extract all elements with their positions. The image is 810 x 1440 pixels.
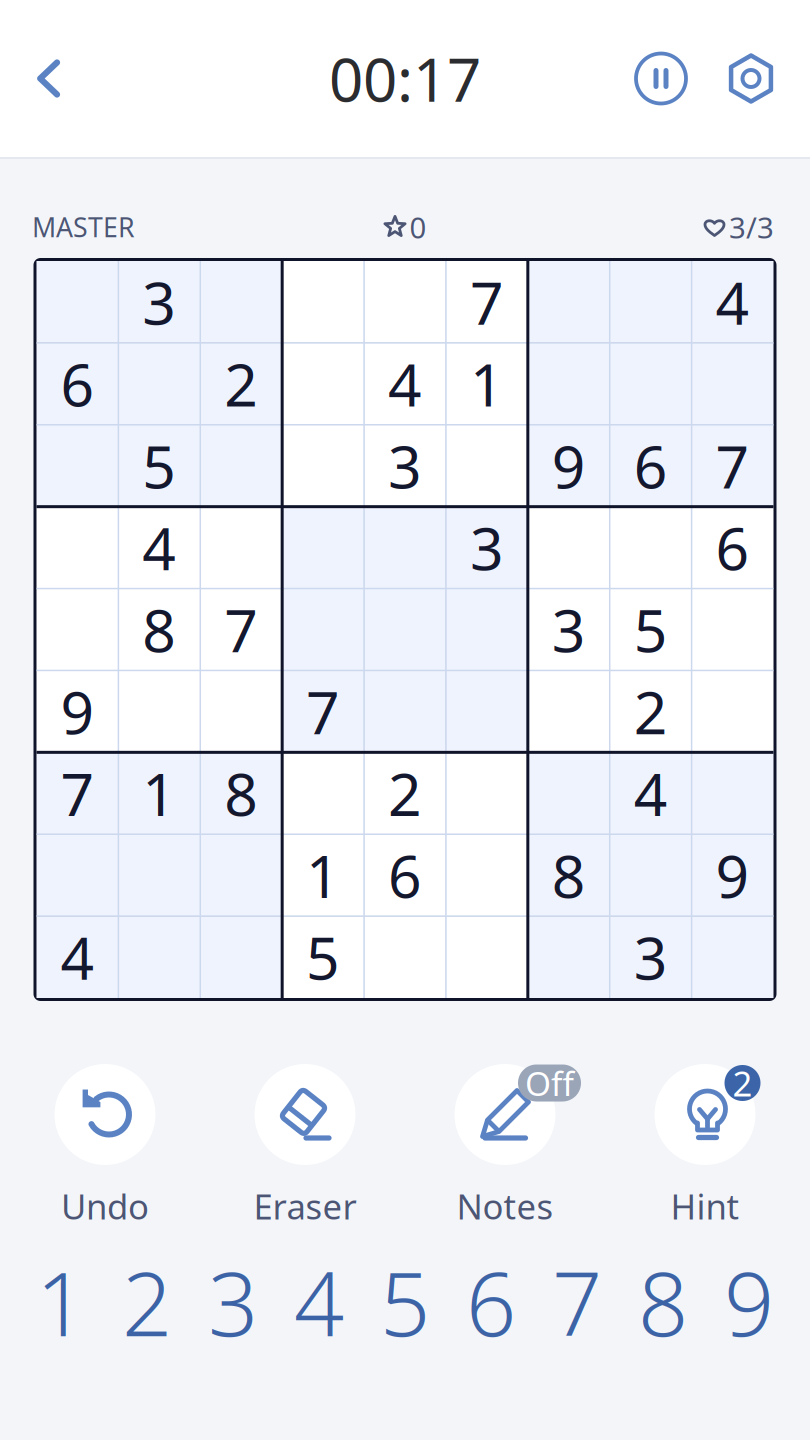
button[interactable]: Row 8 column 9, 9 xyxy=(692,834,773,916)
button[interactable]: Row 9 column 1, 4 xyxy=(36,916,118,998)
button[interactable]: Row 5 column 3, 7 xyxy=(200,589,282,670)
button[interactable]: Row 4 column 8, empty xyxy=(610,507,692,589)
button[interactable]: Row 5 column 6, empty xyxy=(446,589,528,670)
button[interactable]: Off xyxy=(405,1064,605,1227)
button[interactable]: Row 8 column 6, empty xyxy=(446,834,528,916)
button[interactable]: Row 8 column 8, empty xyxy=(610,834,692,916)
button[interactable]: Row 6 column 7, empty xyxy=(528,670,610,752)
button[interactable]: Row 2 column 2, empty xyxy=(118,343,200,425)
button[interactable]: Row 6 column 4, 7 xyxy=(282,670,364,752)
button[interactable]: Row 1 column 1, empty xyxy=(36,261,118,343)
button[interactable]: Row 8 column 3, empty xyxy=(200,834,282,916)
button[interactable]: Row 3 column 5, 3 xyxy=(364,425,446,507)
button[interactable]: Row 1 column 2, 3 xyxy=(118,261,200,343)
button[interactable]: Row 4 column 4, empty xyxy=(282,507,364,589)
button[interactable]: Row 2 column 3, 2 xyxy=(200,343,282,425)
button[interactable]: Row 1 column 5, empty xyxy=(364,261,446,343)
button[interactable]: Row 3 column 8, 6 xyxy=(610,425,692,507)
button[interactable]: Row 7 column 3, 8 xyxy=(200,752,282,834)
button[interactable]: 9 xyxy=(706,1247,792,1357)
button[interactable]: Row 4 column 1, empty xyxy=(36,507,118,589)
button[interactable]: Row 9 column 8, 3 xyxy=(610,916,692,998)
button[interactable]: Row 7 column 5, 2 xyxy=(364,752,446,834)
button[interactable]: Row 4 column 5, empty xyxy=(364,507,446,589)
button[interactable]: Undo xyxy=(5,1064,205,1227)
button[interactable]: Row 2 column 6, 1 xyxy=(446,343,528,425)
button[interactable]: Row 9 column 5, empty xyxy=(364,916,446,998)
button[interactable]: Row 8 column 4, 1 xyxy=(282,834,364,916)
button[interactable]: Row 3 column 3, empty xyxy=(200,425,282,507)
button[interactable]: Row 9 column 3, empty xyxy=(200,916,282,998)
staticText: 5 xyxy=(306,918,340,996)
button[interactable]: Row 1 column 9, 4 xyxy=(692,261,773,343)
button[interactable]: Row 7 column 6, empty xyxy=(446,752,528,834)
button[interactable]: Row 7 column 7, empty xyxy=(528,752,610,834)
button[interactable]: Row 3 column 1, empty xyxy=(36,425,118,507)
button[interactable]: Row 5 column 2, 8 xyxy=(118,589,200,670)
button[interactable]: Row 8 column 1, empty xyxy=(36,834,118,916)
button[interactable]: 7 xyxy=(534,1247,620,1357)
button[interactable]: Pause xyxy=(626,38,696,118)
button[interactable]: Row 2 column 9, empty xyxy=(692,343,773,425)
button[interactable]: Row 5 column 9, empty xyxy=(692,589,773,670)
button[interactable]: 8 xyxy=(620,1247,706,1357)
button[interactable]: Row 6 column 1, 9 xyxy=(36,670,118,752)
button[interactable]: Row 9 column 4, 5 xyxy=(282,916,364,998)
button[interactable]: Row 5 column 8, 5 xyxy=(610,589,692,670)
button[interactable]: 1 xyxy=(18,1247,104,1357)
button[interactable]: Row 3 column 7, 9 xyxy=(528,425,610,507)
button[interactable]: Row 9 column 7, empty xyxy=(528,916,610,998)
button[interactable]: Row 2 column 5, 4 xyxy=(364,343,446,425)
button[interactable]: Settings xyxy=(716,38,786,118)
button[interactable]: Row 7 column 2, 1 xyxy=(118,752,200,834)
button[interactable]: Row 3 column 6, empty xyxy=(446,425,528,507)
button[interactable]: Row 6 column 6, empty xyxy=(446,670,528,752)
button[interactable]: Row 8 column 2, empty xyxy=(118,834,200,916)
button[interactable]: Row 5 column 1, empty xyxy=(36,589,118,670)
staticText: 3/3 xyxy=(729,207,774,246)
staticText: 00:17 xyxy=(329,39,481,118)
button[interactable]: Row 6 column 5, empty xyxy=(364,670,446,752)
button[interactable]: Row 6 column 8, 2 xyxy=(610,670,692,752)
button[interactable]: Row 7 column 9, empty xyxy=(692,752,773,834)
button[interactable]: Row 3 column 4, empty xyxy=(282,425,364,507)
button[interactable]: 6 xyxy=(448,1247,534,1357)
button[interactable]: Row 6 column 9, empty xyxy=(692,670,773,752)
button[interactable]: 3 xyxy=(190,1247,276,1357)
button[interactable]: Row 8 column 5, 6 xyxy=(364,834,446,916)
button[interactable]: Row 2 column 1, 6 xyxy=(36,343,118,425)
button[interactable]: Row 1 column 4, empty xyxy=(282,261,364,343)
button[interactable]: Row 1 column 6, 7 xyxy=(446,261,528,343)
button[interactable]: Row 1 column 3, empty xyxy=(200,261,282,343)
button[interactable]: Row 2 column 8, empty xyxy=(610,343,692,425)
button[interactable]: Row 4 column 6, 3 xyxy=(446,507,528,589)
button[interactable]: Row 7 column 8, 4 xyxy=(610,752,692,834)
button[interactable]: Row 9 column 9, empty xyxy=(692,916,773,998)
button[interactable]: Row 3 column 9, 7 xyxy=(692,425,773,507)
button[interactable]: Back xyxy=(19,38,79,118)
button[interactable]: Row 4 column 7, empty xyxy=(528,507,610,589)
button[interactable]: Row 3 column 2, 5 xyxy=(118,425,200,507)
button[interactable]: Row 7 column 4, empty xyxy=(282,752,364,834)
button[interactable]: Row 2 column 7, empty xyxy=(528,343,610,425)
button[interactable]: 5 xyxy=(362,1247,448,1357)
button[interactable]: Row 8 column 7, 8 xyxy=(528,834,610,916)
button[interactable]: Row 5 column 4, empty xyxy=(282,589,364,670)
button[interactable]: Row 1 column 8, empty xyxy=(610,261,692,343)
button[interactable]: Row 2 column 4, empty xyxy=(282,343,364,425)
button[interactable]: Row 6 column 3, empty xyxy=(200,670,282,752)
button[interactable]: Row 4 column 3, empty xyxy=(200,507,282,589)
button[interactable]: Row 5 column 7, 3 xyxy=(528,589,610,670)
button[interactable]: Row 5 column 5, empty xyxy=(364,589,446,670)
button[interactable]: 4 xyxy=(276,1247,362,1357)
button[interactable]: Row 7 column 1, 7 xyxy=(36,752,118,834)
button[interactable]: Row 9 column 2, empty xyxy=(118,916,200,998)
button[interactable]: 2 xyxy=(104,1247,190,1357)
button[interactable]: Eraser xyxy=(205,1064,405,1227)
button[interactable]: Row 6 column 2, empty xyxy=(118,670,200,752)
button[interactable]: Row 4 column 2, 4 xyxy=(118,507,200,589)
button[interactable]: Row 4 column 9, 6 xyxy=(692,507,773,589)
button[interactable]: 2 xyxy=(605,1064,805,1227)
button[interactable]: Row 9 column 6, empty xyxy=(446,916,528,998)
button[interactable]: Row 1 column 7, empty xyxy=(528,261,610,343)
